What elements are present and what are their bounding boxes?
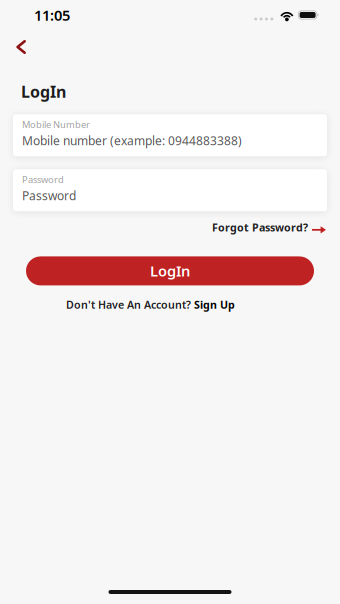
staticText: Don't Have An Account? [66,297,191,312]
button[interactable]: Mobile Number [13,114,327,156]
button[interactable]: Forgot Password? [204,211,340,238]
staticText: LogIn [150,261,190,281]
button[interactable]: Back [0,30,37,59]
staticText: Password [22,173,64,186]
staticText: Password [22,188,76,203]
staticText: Forgot Password? [212,220,308,234]
button[interactable]: LogIn [26,256,314,285]
staticText: Sign Up [194,297,235,312]
button[interactable]: Don't Have An Account? [60,289,241,320]
staticText: Mobile Number [22,118,90,131]
staticText: 11:05 [34,5,70,25]
button[interactable]: Password [13,169,327,211]
staticText: Mobile number (example: 0944883388) [22,133,242,148]
staticText: LogIn [21,81,66,102]
